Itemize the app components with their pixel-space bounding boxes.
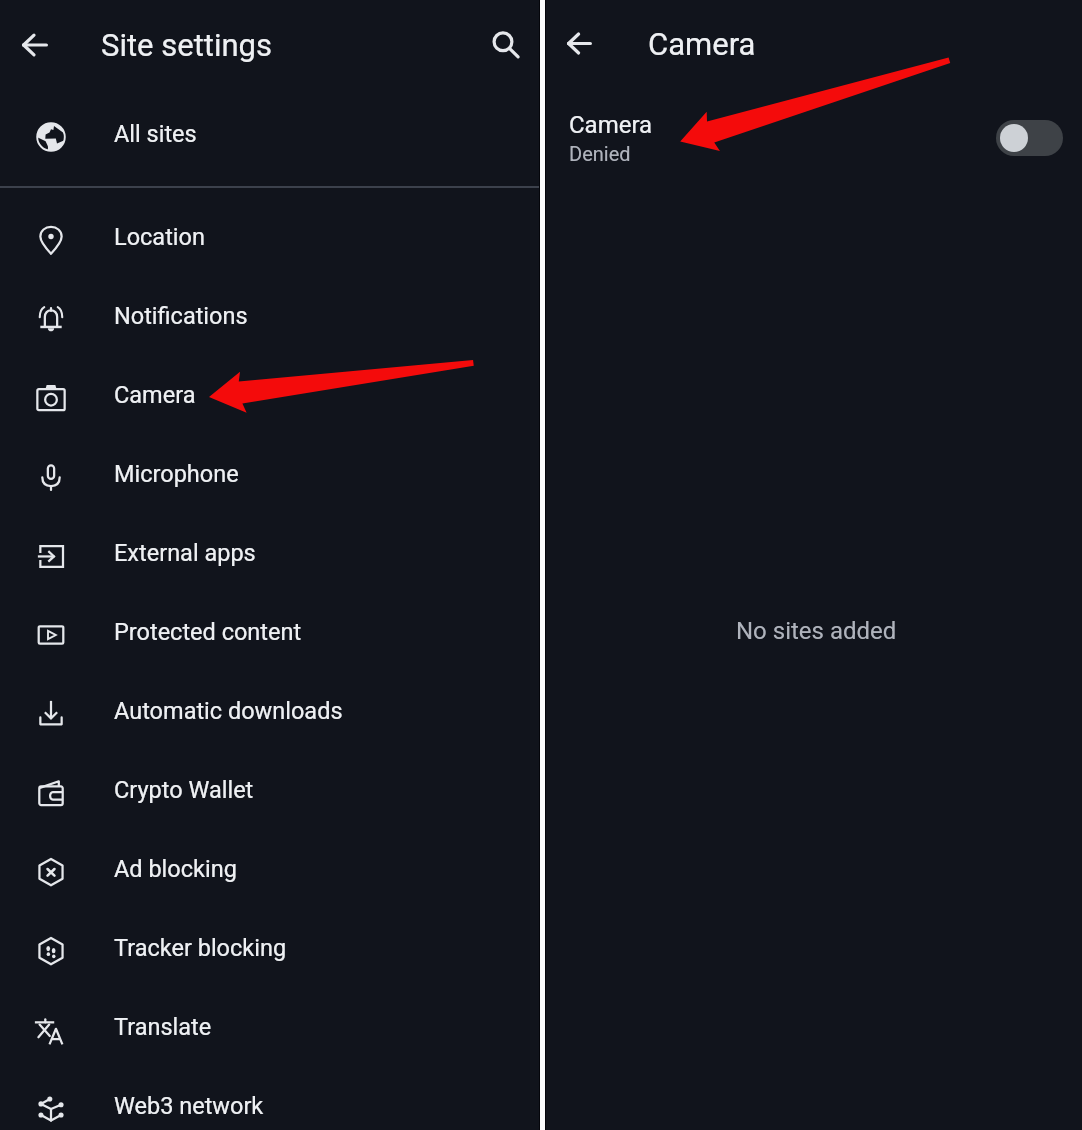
button[interactable]: Back xyxy=(12,22,57,67)
button[interactable]: Protected content xyxy=(0,592,539,671)
button[interactable]: Camera xyxy=(0,355,539,434)
button[interactable]: Translate xyxy=(0,987,539,1066)
button[interactable]: Crypto Wallet xyxy=(0,750,539,829)
staticText: External apps xyxy=(114,539,256,567)
button[interactable]: Tracker blocking xyxy=(0,908,539,987)
button[interactable]: Toggle camera permission xyxy=(996,120,1063,156)
button[interactable]: Ad blocking xyxy=(0,829,539,908)
button[interactable]: Location xyxy=(0,197,539,276)
button[interactable]: All sites xyxy=(0,94,539,173)
staticText: Ad blocking xyxy=(114,855,237,883)
staticText: Microphone xyxy=(114,460,239,488)
staticText: Denied xyxy=(569,142,631,165)
staticText: Web3 network xyxy=(114,1092,264,1120)
button[interactable]: Back xyxy=(557,21,602,66)
button[interactable]: Search xyxy=(484,22,528,66)
staticText: Automatic downloads xyxy=(114,697,343,725)
staticText: No sites added xyxy=(736,617,897,645)
staticText: Camera xyxy=(648,26,756,62)
staticText: Crypto Wallet xyxy=(114,776,254,804)
button[interactable]: Automatic downloads xyxy=(0,671,539,750)
staticText: Site settings xyxy=(101,27,272,63)
button[interactable]: Camera xyxy=(546,96,1082,176)
staticText: Notifications xyxy=(114,302,248,330)
staticText: Tracker blocking xyxy=(114,934,287,962)
staticText: Location xyxy=(114,223,205,251)
button[interactable]: Notifications xyxy=(0,276,539,355)
button[interactable]: Web3 network xyxy=(0,1066,539,1130)
staticText: Camera xyxy=(569,111,653,139)
staticText: Protected content xyxy=(114,618,302,646)
button[interactable]: Microphone xyxy=(0,434,539,513)
button[interactable]: External apps xyxy=(0,513,539,592)
staticText: Translate xyxy=(114,1013,212,1041)
staticText: All sites xyxy=(114,120,197,148)
staticText: Camera xyxy=(114,381,196,409)
